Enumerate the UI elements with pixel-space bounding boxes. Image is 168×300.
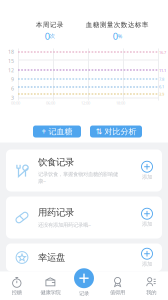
- staticText: 00:00: [11, 100, 20, 106]
- button[interactable]: 健康学院: [34, 271, 67, 300]
- button[interactable]: 用药记录: [6, 196, 162, 238]
- button[interactable]: 控糖: [0, 271, 34, 300]
- staticText: 还没有添加用药记录哦~: [38, 221, 91, 228]
- staticText: 次: [50, 33, 55, 39]
- staticText: 6: [11, 85, 14, 92]
- staticText: 18: [8, 48, 14, 55]
- button[interactable]: 我的: [134, 271, 168, 300]
- staticText: 幸运盘: [38, 252, 65, 263]
- staticText: 本周记录: [36, 21, 64, 29]
- staticText: 对比分析: [104, 127, 136, 136]
- staticText: 15: [8, 57, 14, 64]
- button[interactable]: 记录: [67, 265, 101, 299]
- staticText: 控糖: [12, 289, 22, 296]
- staticText: 我的: [146, 289, 156, 296]
- button[interactable]: 值得用: [101, 271, 134, 300]
- staticText: 18:00: [116, 100, 125, 106]
- button[interactable]: +: [33, 125, 81, 137]
- staticText: 12: [8, 67, 14, 74]
- staticText: 3.9: [159, 91, 164, 97]
- staticText: 血糖测量次数达标率: [86, 21, 149, 29]
- staticText: 0: [113, 30, 118, 42]
- button[interactable]: 幸运盘: [6, 243, 162, 271]
- staticText: 记录: [79, 290, 89, 297]
- staticText: +: [41, 126, 46, 137]
- staticText: 6.1: [159, 84, 164, 89]
- staticText: 饮食记录: [38, 156, 74, 168]
- staticText: 12:00: [81, 100, 90, 106]
- staticText: 3: [11, 94, 14, 101]
- staticText: ⇅: [95, 127, 102, 136]
- staticText: 记血糖: [48, 127, 72, 136]
- staticText: 健康学院: [40, 289, 60, 296]
- staticText: 9: [11, 76, 14, 83]
- staticText: 添加: [142, 261, 152, 267]
- staticText: 值得用: [110, 289, 125, 296]
- staticText: 06:00: [46, 100, 55, 106]
- button[interactable]: ⇅: [90, 125, 142, 137]
- staticText: 16.7: [159, 50, 166, 55]
- button[interactable]: 饮食记录: [6, 149, 162, 191]
- staticText: 11.1: [159, 68, 166, 73]
- staticText: %: [118, 33, 122, 40]
- staticText: 添加: [142, 221, 152, 227]
- staticText: 添加: [142, 174, 152, 180]
- staticText: 用药记录: [38, 207, 74, 218]
- staticText: 记录饮食，掌握食物对血糖的影响健康~: [38, 171, 118, 184]
- staticText: 0: [45, 30, 50, 42]
- staticText: 7.8: [159, 76, 164, 82]
